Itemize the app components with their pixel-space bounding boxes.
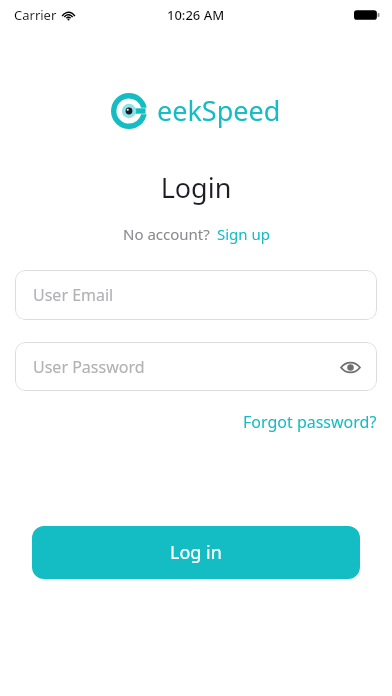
staticText: 10:26 AM: [167, 6, 225, 24]
button[interactable]: User Email: [15, 270, 377, 320]
staticText: Log in: [170, 540, 222, 565]
button[interactable]: User Password: [15, 342, 377, 391]
staticText: Login: [0, 169, 392, 206]
staticText: eekSpeed: [157, 92, 281, 129]
button[interactable]: Forgot password?: [243, 411, 377, 433]
staticText: User Password: [33, 356, 145, 378]
staticText: Sign up: [217, 224, 270, 244]
staticText: Forgot password?: [243, 411, 377, 433]
staticText: Carrier: [14, 6, 57, 24]
staticText: User Email: [33, 284, 114, 306]
staticText: No account?: [123, 224, 210, 244]
button[interactable]: Sign up: [217, 224, 270, 244]
button[interactable]: Show password: [335, 352, 365, 382]
button[interactable]: Log in: [32, 526, 360, 579]
